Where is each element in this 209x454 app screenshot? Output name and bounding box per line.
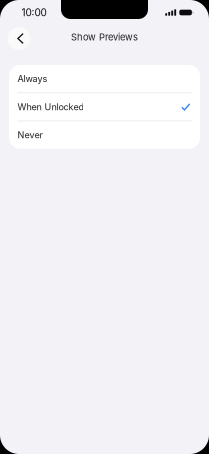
staticText: When Unlocked (17, 101, 84, 112)
staticText: Show Previews (71, 31, 138, 43)
staticText: Never (17, 130, 42, 141)
button[interactable]: Always (9, 65, 200, 92)
staticText: 10:00 (21, 6, 46, 19)
staticText: Always (17, 73, 47, 84)
button[interactable]: When Unlocked (9, 93, 200, 121)
button[interactable]: Never (9, 121, 200, 149)
button[interactable]: Back (7, 27, 30, 50)
